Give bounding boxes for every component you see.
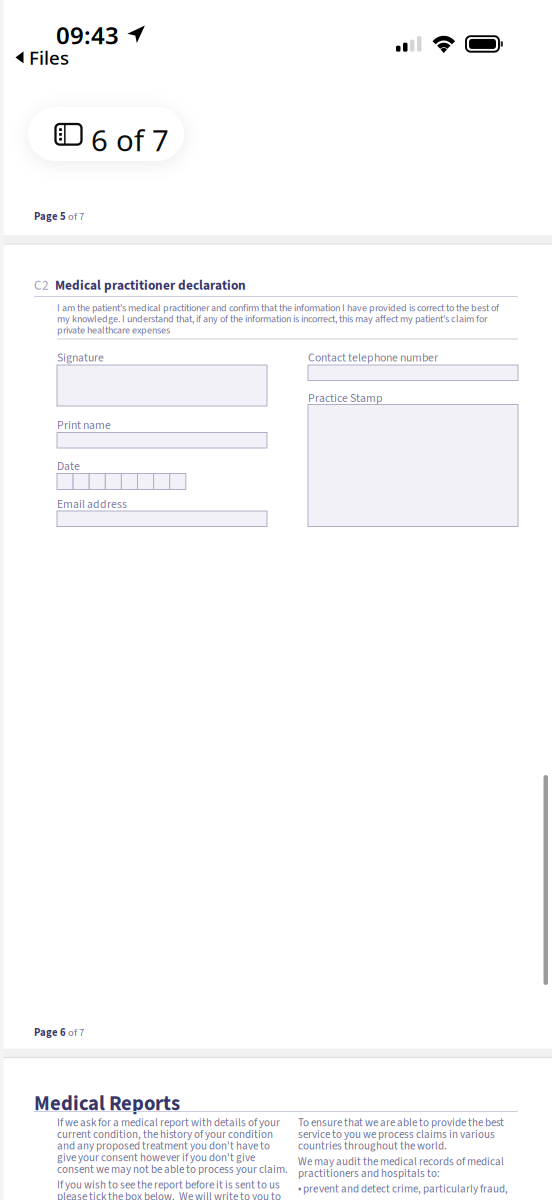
- staticText: • prevent and detect crime, particularly…: [298, 1183, 508, 1195]
- staticText: Email address: [57, 496, 127, 513]
- staticText: C2: [34, 276, 49, 295]
- staticText: 09:43: [56, 19, 119, 51]
- button[interactable]: 6 of 7: [28, 107, 184, 161]
- staticText: If we ask for a medical report with deta…: [57, 1117, 288, 1175]
- staticText: Signature: [57, 349, 104, 366]
- staticText: Practice Stamp: [308, 390, 383, 407]
- staticText: of 7: [66, 209, 84, 224]
- staticText: To ensure that we are able to provide th…: [298, 1117, 504, 1152]
- staticText: Date: [57, 458, 80, 475]
- staticText: Page 5: [34, 209, 66, 224]
- staticText: Medical Reports: [34, 1089, 180, 1118]
- staticText: I am the patient's medical practitioner …: [57, 302, 499, 336]
- staticText: Contact telephone number: [308, 349, 438, 366]
- staticText: Page 6: [34, 1025, 66, 1040]
- button[interactable]: Files: [13, 42, 71, 73]
- staticText: Files: [29, 45, 69, 70]
- staticText: We may audit the medical records of medi…: [298, 1156, 504, 1179]
- staticText: Print name: [57, 417, 111, 434]
- staticText: If you wish to see the report before it …: [57, 1179, 281, 1200]
- staticText: Medical practitioner declaration: [55, 276, 246, 295]
- staticText: of 7: [66, 1025, 84, 1040]
- staticText: 6 of 7: [91, 120, 169, 159]
